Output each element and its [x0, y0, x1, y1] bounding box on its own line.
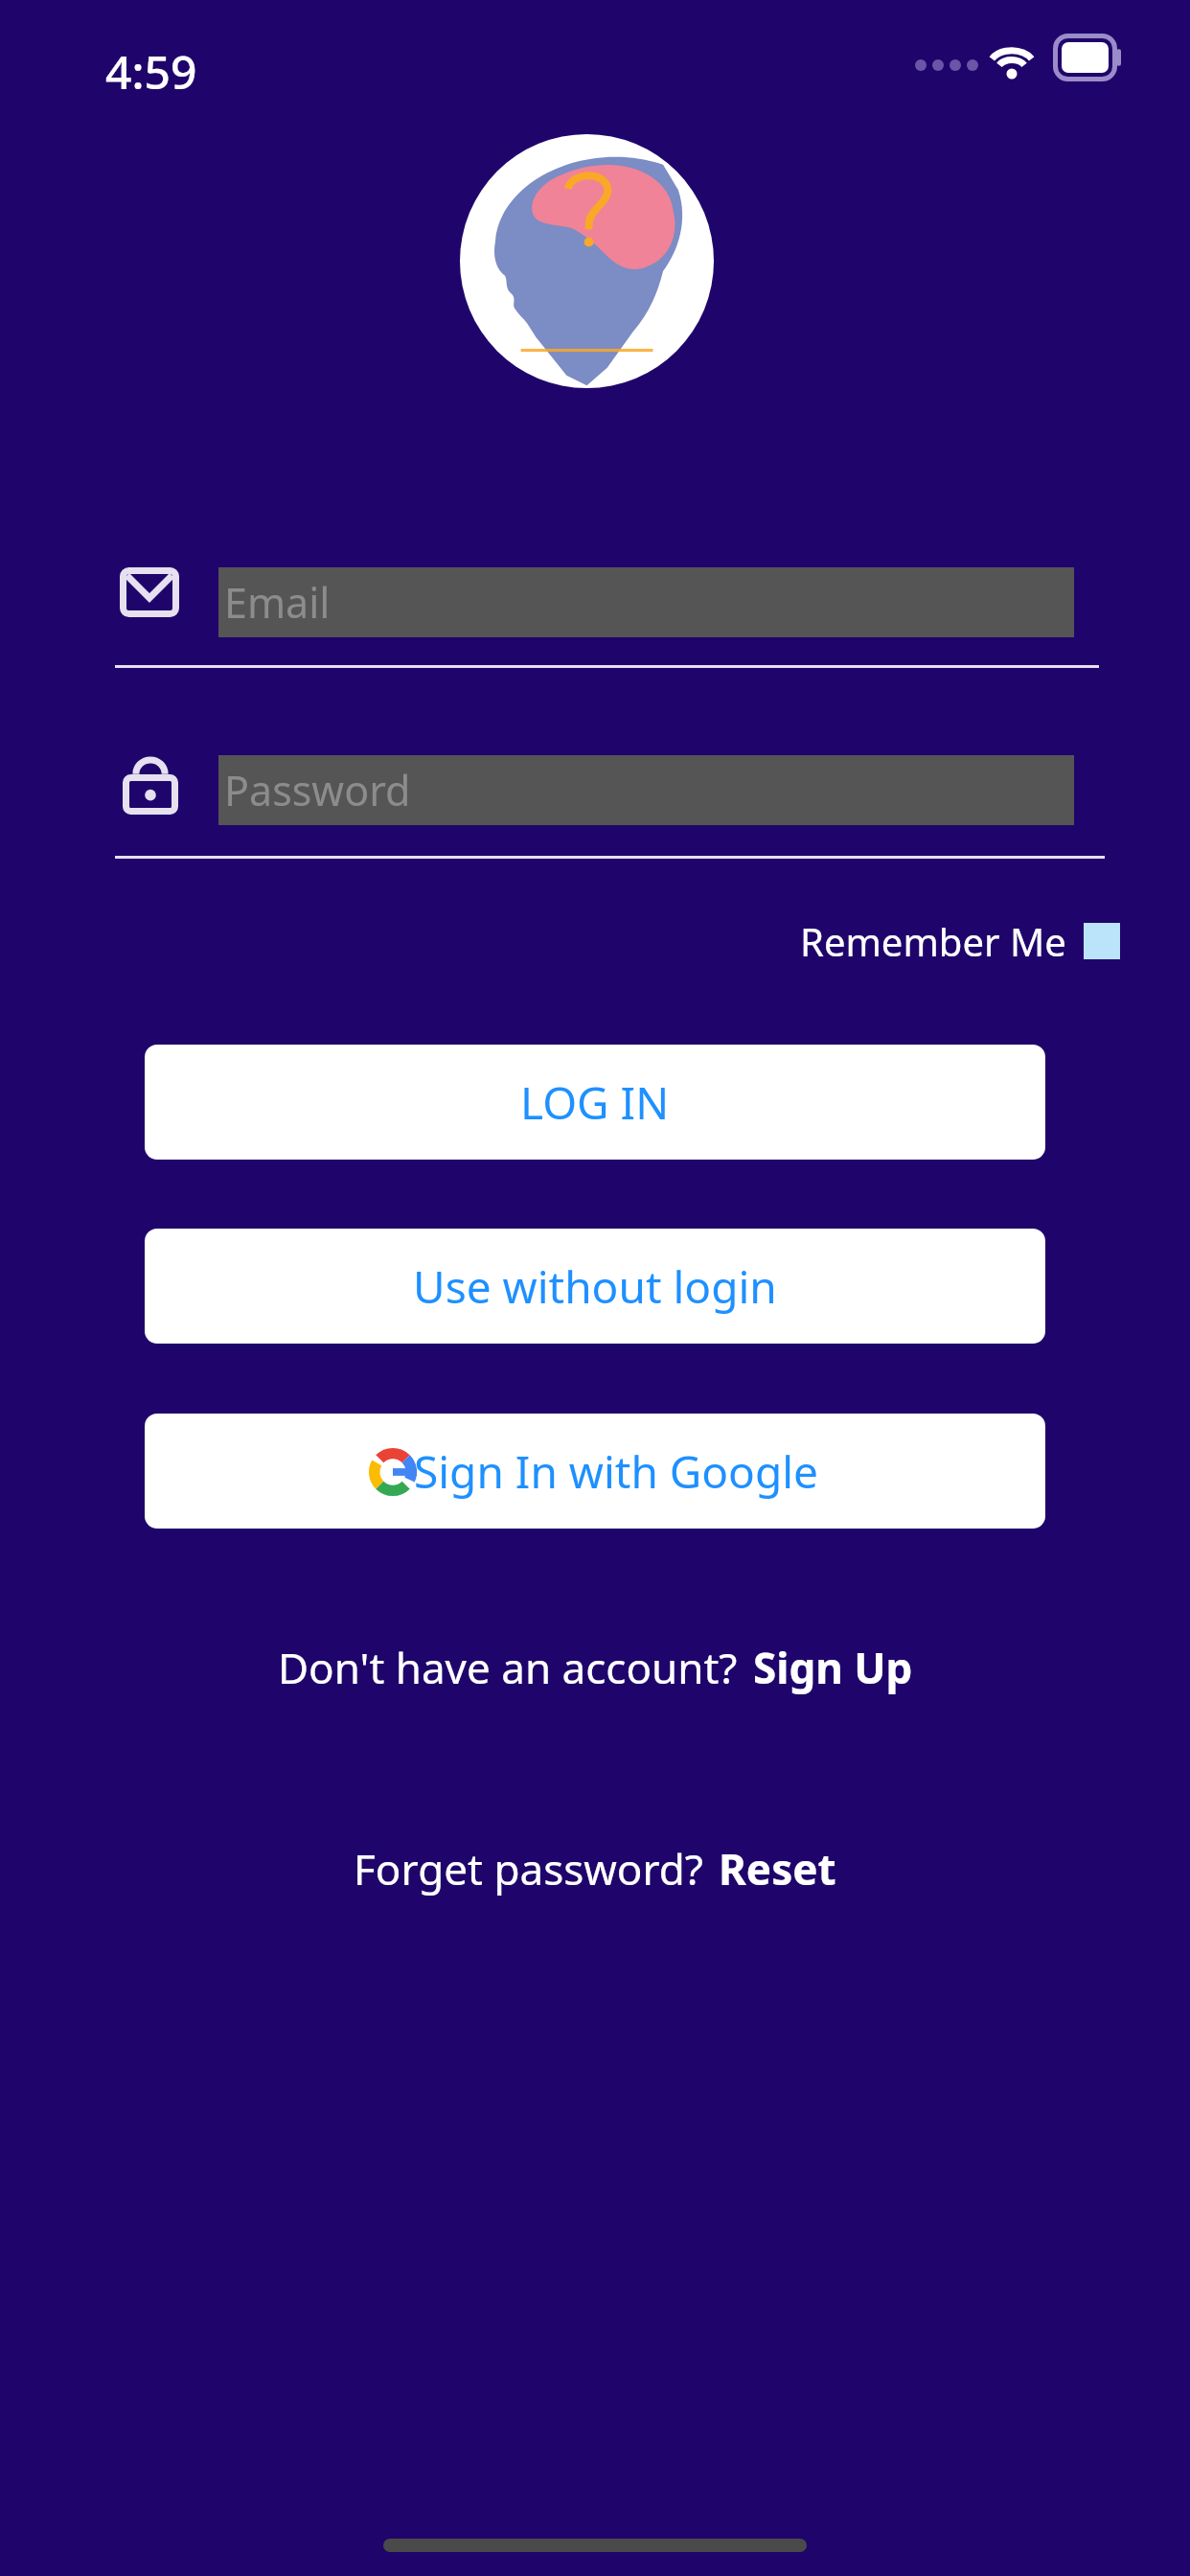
button[interactable]: Sign In with Google: [145, 1414, 1045, 1529]
button[interactable]: Remember Me: [800, 915, 1120, 967]
button[interactable]: Password: [115, 736, 1107, 859]
button[interactable]: Don't have an account?: [0, 1639, 1190, 1696]
staticText: Remember Me: [800, 915, 1066, 967]
staticText: Email: [224, 574, 331, 631]
button[interactable]: LOG IN: [145, 1045, 1045, 1160]
button[interactable]: Forget password?: [0, 1840, 1190, 1897]
other: Password: [123, 753, 178, 815]
staticText: Sign In with Google: [414, 1441, 819, 1502]
button[interactable]: Use without login: [145, 1229, 1045, 1344]
staticText: 4:59: [105, 40, 197, 103]
staticText: Sign Up: [753, 1639, 913, 1696]
other: Email: [120, 567, 179, 617]
staticText: Forget password?: [354, 1840, 703, 1897]
staticText: LOG IN: [520, 1072, 670, 1133]
staticText: Use without login: [413, 1256, 777, 1317]
staticText: Reset: [719, 1840, 836, 1897]
staticText: Don't have an account?: [278, 1639, 738, 1696]
button[interactable]: Email: [115, 546, 1105, 669]
staticText: Password: [224, 762, 411, 818]
